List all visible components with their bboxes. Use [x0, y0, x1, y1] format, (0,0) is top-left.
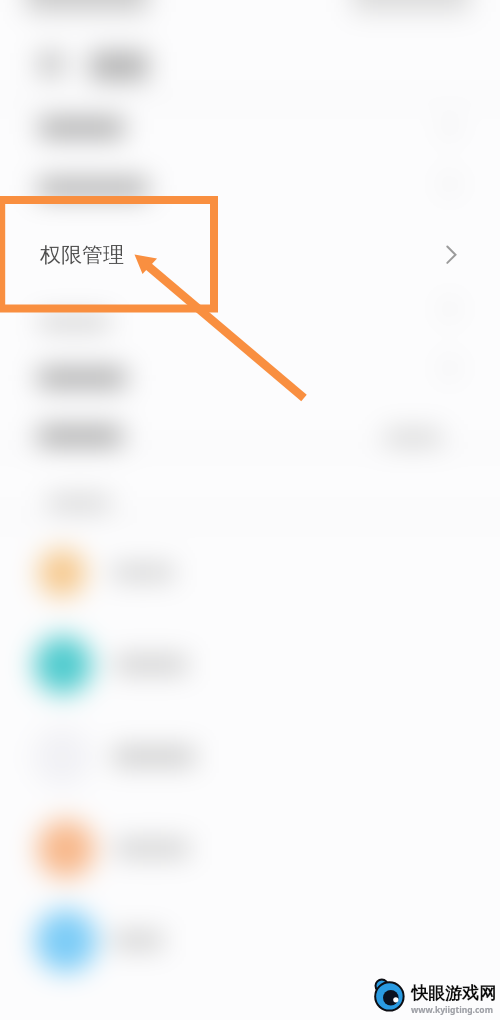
button[interactable]: Battery usage — [0, 349, 500, 407]
staticText: 快眼游戏网 — [411, 983, 496, 1004]
button[interactable]: Notifications — [0, 99, 500, 157]
button[interactable]: App information — [0, 0, 500, 34]
button[interactable]: Permissions — [0, 226, 500, 284]
button[interactable]: Default settings — [0, 293, 500, 351]
staticText: 权限管理 — [40, 242, 124, 268]
button[interactable]: App 4 — [0, 803, 500, 895]
button[interactable]: 权限管理 — [0, 226, 500, 284]
button[interactable]: Storage usage — [0, 159, 500, 217]
button[interactable]: Data usage — [0, 407, 500, 465]
button[interactable]: App 3 — [0, 711, 500, 803]
button[interactable]: Force stop — [90, 52, 148, 80]
button[interactable]: App 1 — [0, 527, 500, 619]
button[interactable]: App 2 — [0, 619, 500, 711]
button[interactable]: Storage — [0, 474, 500, 532]
button[interactable]: App 5 — [0, 895, 500, 987]
staticText: www.kyiigting.com — [411, 1004, 493, 1016]
